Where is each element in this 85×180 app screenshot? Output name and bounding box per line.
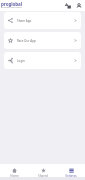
button[interactable]: Settings xyxy=(57,164,85,177)
staticText: Shared xyxy=(38,174,48,177)
staticText: Home xyxy=(10,174,19,177)
button[interactable]: Shared xyxy=(29,164,57,177)
button[interactable]: Translate xyxy=(62,0,73,11)
staticText: Share App xyxy=(17,19,32,23)
button[interactable]: Account xyxy=(73,0,84,11)
staticText: proglobal xyxy=(1,1,23,7)
button[interactable]: Login xyxy=(4,52,81,69)
button[interactable]: Share App xyxy=(4,12,81,29)
button[interactable]: Rate Our App xyxy=(4,32,81,49)
button[interactable]: Home xyxy=(0,164,29,177)
staticText: BUSINESS SOLUTIONS xyxy=(1,6,22,9)
staticText: Rate Our App xyxy=(17,39,36,43)
staticText: Settings xyxy=(65,174,77,177)
staticText: Login xyxy=(17,59,25,63)
